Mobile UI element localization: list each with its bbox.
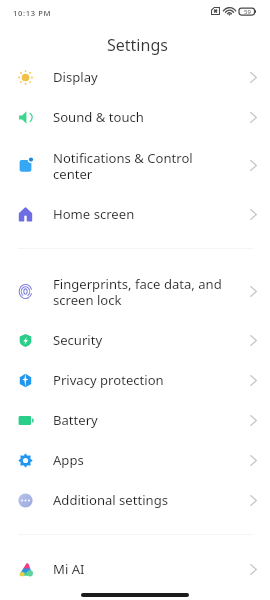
staticText: Additional settings bbox=[53, 491, 169, 509]
staticText: 10:13 PM bbox=[13, 8, 52, 18]
staticText: Mi AI bbox=[53, 560, 85, 578]
button[interactable]: Display bbox=[0, 57, 270, 97]
button[interactable]: Sound & touch bbox=[0, 97, 270, 137]
staticText: Apps bbox=[53, 451, 84, 469]
button[interactable]: Additional settings bbox=[0, 480, 270, 520]
button[interactable]: Privacy protection bbox=[0, 360, 270, 400]
button[interactable]: Battery bbox=[0, 400, 270, 440]
button[interactable]: Security bbox=[0, 320, 270, 360]
staticText: Battery bbox=[53, 411, 98, 429]
staticText: Fingerprints, face data, and screen lock bbox=[53, 275, 222, 308]
staticText: Privacy protection bbox=[53, 371, 164, 389]
staticText: Notifications & Control center bbox=[53, 149, 193, 182]
button[interactable]: Home screen bbox=[0, 194, 270, 234]
staticText: Security bbox=[53, 331, 103, 349]
button[interactable]: Notifications & Control center bbox=[0, 137, 270, 194]
staticText: Sound & touch bbox=[53, 108, 144, 126]
button[interactable]: Fingerprints, face data, and screen lock bbox=[0, 263, 270, 320]
staticText: Home screen bbox=[53, 205, 135, 223]
staticText: 59 bbox=[244, 8, 251, 15]
button[interactable]: Mi AI bbox=[0, 549, 270, 589]
staticText: Settings bbox=[107, 34, 168, 56]
button[interactable]: Apps bbox=[0, 440, 270, 480]
staticText: Display bbox=[53, 68, 98, 86]
